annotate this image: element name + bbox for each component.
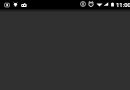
staticText: 11:00 [116, 1, 130, 9]
